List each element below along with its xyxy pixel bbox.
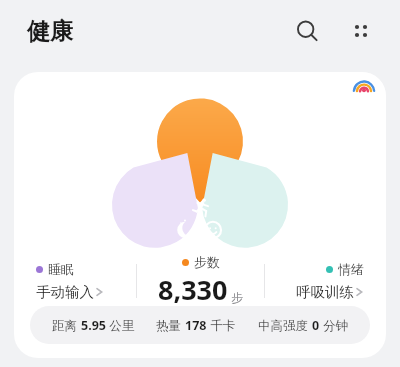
staticText: 中高强度 [258,317,312,334]
staticText: 0 [312,317,320,334]
button[interactable]: More options [342,12,380,50]
staticText: 呼吸训练 [296,283,354,301]
staticText: 178 [185,317,207,334]
button[interactable]: 步数 [137,254,264,308]
staticText: 步数 [194,254,220,270]
staticText: 距离 [52,317,81,334]
button[interactable]: 睡眠 [36,261,136,301]
button[interactable]: Health rings badge [342,72,386,106]
staticText: 热量 [156,317,185,334]
button[interactable]: Search [288,12,326,50]
staticText: 分钟 [320,317,349,334]
button[interactable]: 情绪 [265,261,364,301]
staticText: 情绪 [338,261,364,277]
staticText: 睡眠 [48,261,74,277]
button[interactable]: Health rings badge [14,72,386,358]
staticText: 5.95 [81,317,106,334]
staticText: 公里 [106,317,135,334]
staticText: 8,330 [158,271,228,308]
button[interactable]: 距离 [30,306,370,344]
staticText: 步 [231,290,243,305]
staticText: 手动输入 [36,283,94,301]
staticText: 千卡 [207,317,236,334]
staticText: 健康 [27,17,73,46]
